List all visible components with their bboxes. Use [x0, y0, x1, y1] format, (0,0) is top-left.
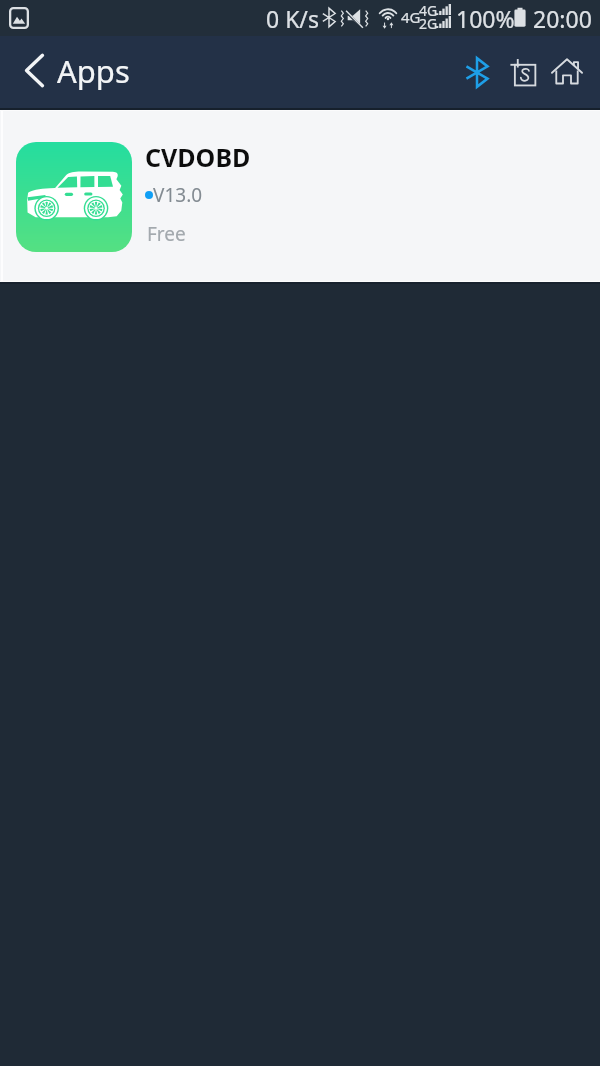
staticText: Apps	[57, 50, 130, 92]
button[interactable]: Bluetooth	[455, 50, 499, 94]
staticText: 0 K/s	[266, 3, 319, 34]
staticText: 100%	[456, 3, 515, 34]
staticText: V13.0	[153, 182, 203, 208]
staticText: 4G	[419, 1, 438, 20]
button[interactable]: Back to Apps	[0, 36, 150, 108]
staticText: Free	[147, 221, 186, 247]
button[interactable]: Screenshot	[502, 50, 546, 94]
button[interactable]: CVDOBD	[0, 111, 600, 281]
button[interactable]: Home	[545, 50, 589, 94]
staticText: 20:00	[533, 3, 592, 34]
staticText: CVDOBD	[145, 140, 251, 174]
staticText: 4G	[401, 7, 421, 27]
staticText: 2G	[419, 14, 438, 33]
